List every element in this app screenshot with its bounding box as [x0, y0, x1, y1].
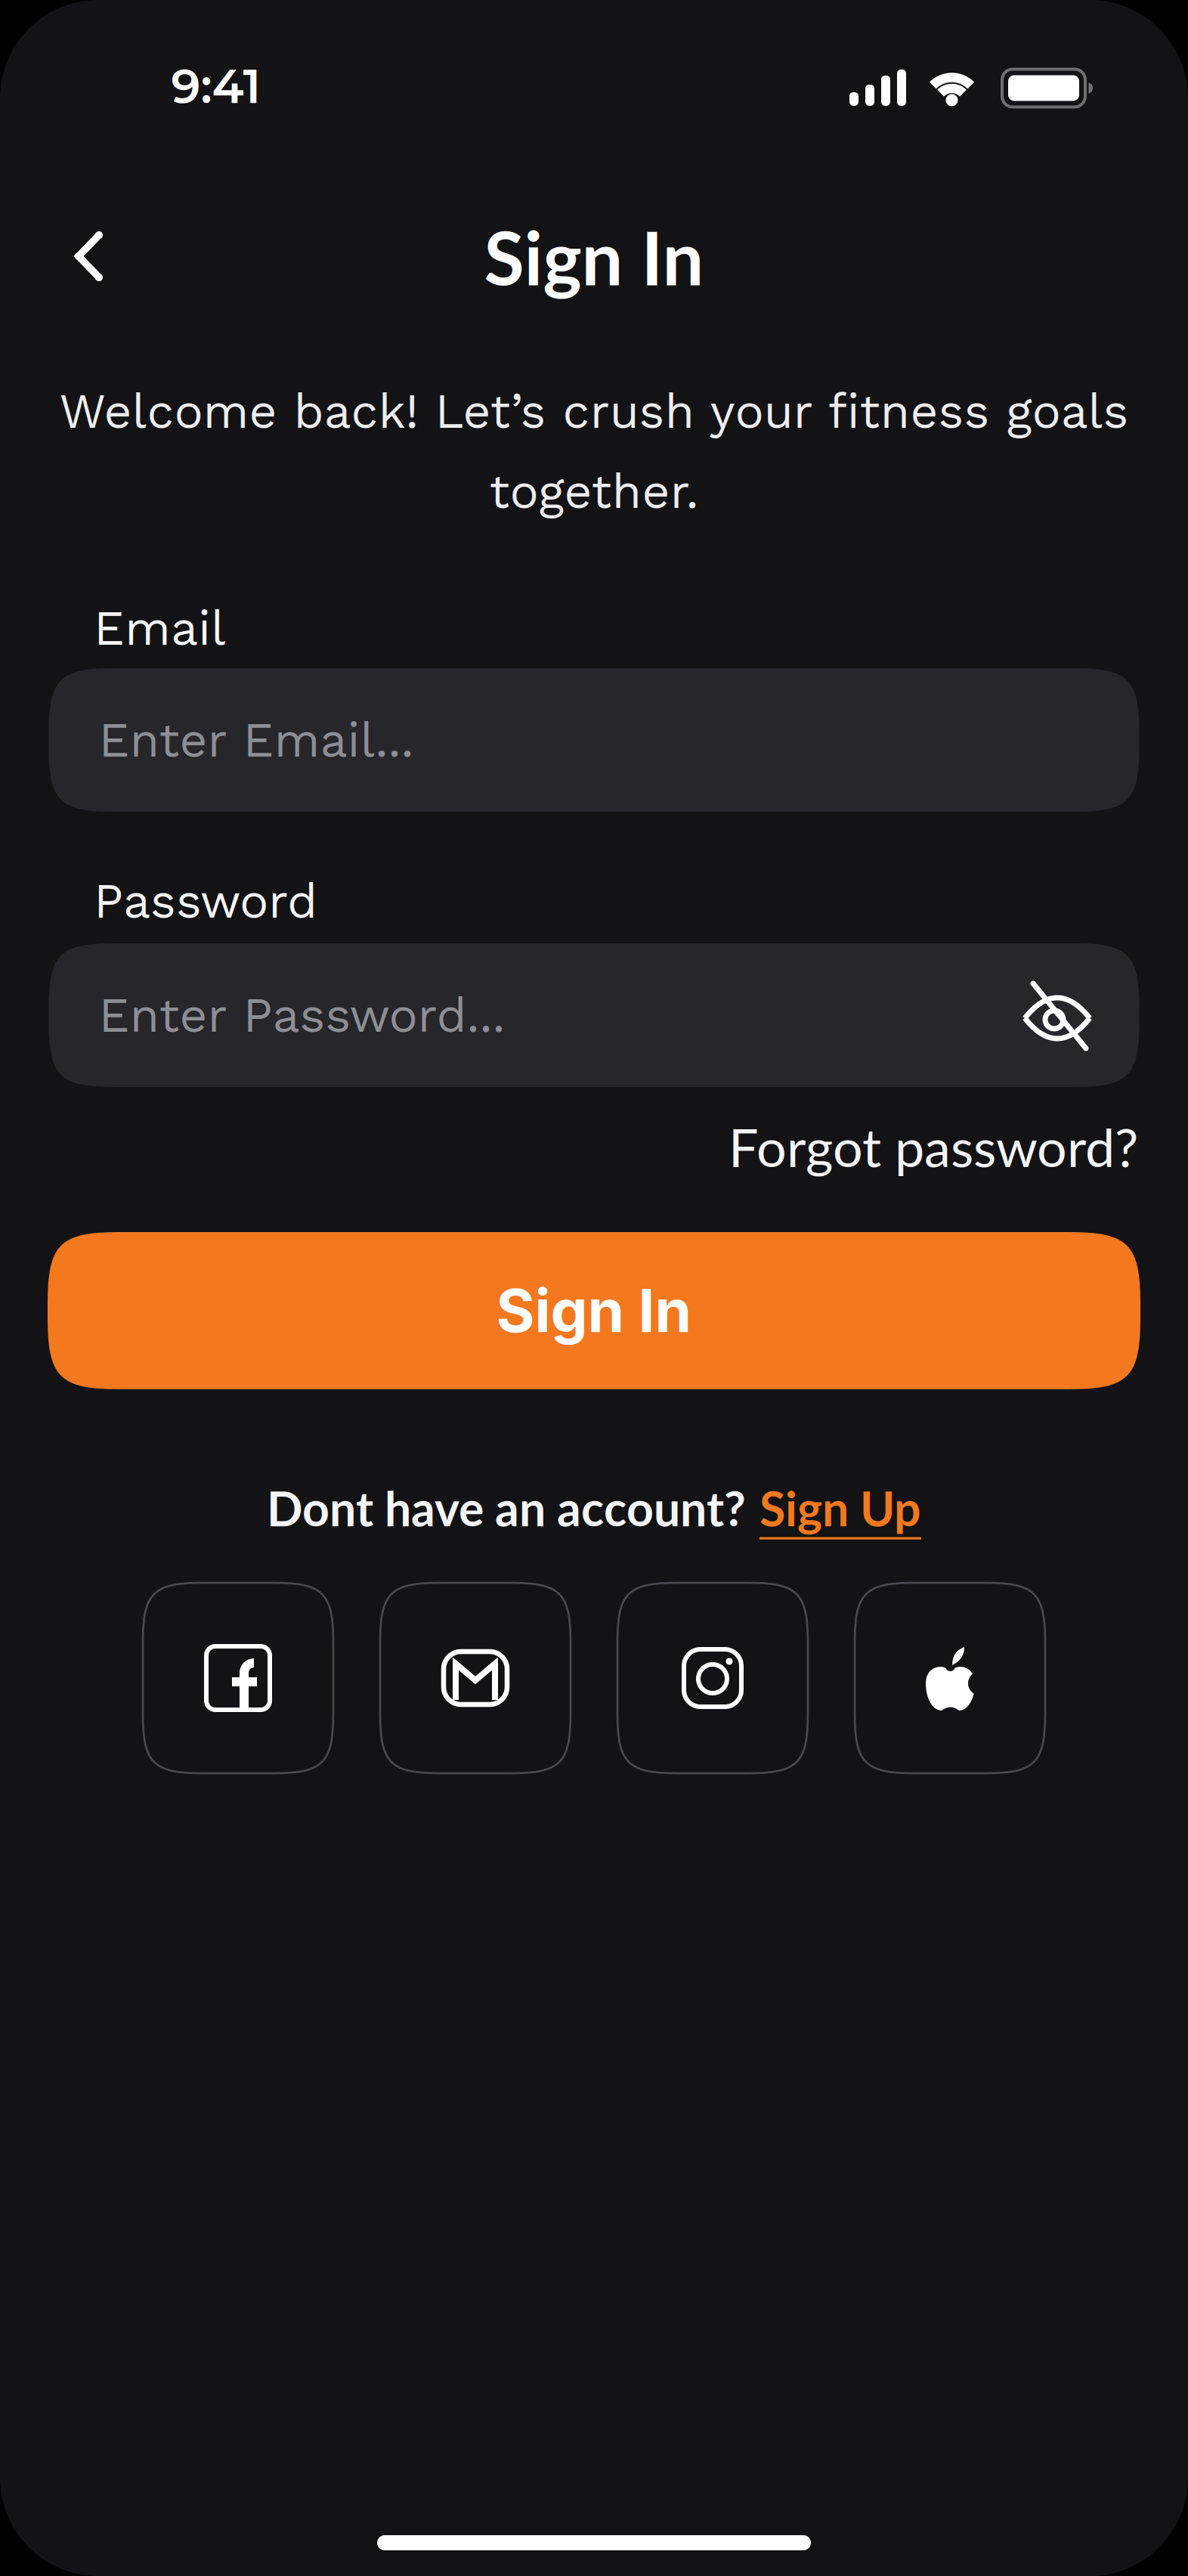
- staticText: Dont have an account?: [267, 1480, 746, 1536]
- button[interactable]: Forgot password?: [729, 1115, 1138, 1178]
- button[interactable]: Show password: [1021, 980, 1094, 1053]
- button[interactable]: Sign in with Instagram: [617, 1583, 808, 1773]
- staticText: Forgot password?: [729, 1115, 1138, 1178]
- button[interactable]: Sign Up: [760, 1480, 921, 1536]
- button[interactable]: Back: [52, 220, 125, 293]
- staticText: Password: [94, 873, 317, 929]
- button[interactable]: Sign in with Apple: [855, 1583, 1045, 1773]
- staticText: Sign In: [484, 213, 704, 301]
- staticText: Enter Email...: [99, 712, 414, 768]
- staticText: Sign Up: [760, 1480, 921, 1536]
- staticText: Welcome back! Let’s crush your fitness g…: [59, 383, 1129, 440]
- button[interactable]: Sign in with Gmail: [380, 1583, 571, 1773]
- button[interactable]: Sign in with Facebook: [143, 1583, 333, 1773]
- staticText: together.: [489, 463, 699, 520]
- staticText: Sign In: [496, 1275, 692, 1346]
- button[interactable]: Enter Password: [49, 943, 1139, 1087]
- button[interactable]: Enter Email: [49, 668, 1139, 812]
- staticText: Email: [94, 600, 226, 657]
- button[interactable]: Sign In: [48, 1232, 1140, 1389]
- staticText: 9:41: [171, 58, 261, 115]
- staticText: Enter Password...: [99, 987, 505, 1044]
